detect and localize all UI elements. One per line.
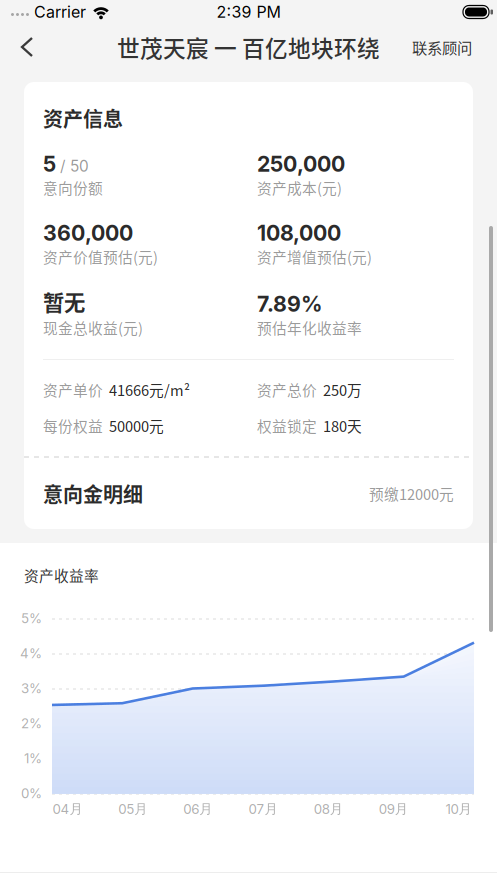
staticText: 5% [21, 610, 42, 626]
staticText: 0% [21, 785, 42, 801]
button[interactable]: 联系顾问 [412, 25, 497, 69]
staticText: 每份权益 [43, 415, 103, 436]
staticText: 250万 [323, 379, 362, 400]
staticText: 联系顾问 [412, 36, 472, 58]
staticText: 04月 [53, 801, 83, 817]
staticText: 09月 [379, 801, 408, 817]
staticText: 06月 [183, 801, 212, 817]
staticText: 预估年化收益率 [257, 317, 362, 338]
staticText: Carrier [34, 2, 86, 22]
staticText: 10月 [445, 801, 471, 817]
staticText: 5 [43, 151, 56, 177]
staticText: 250,000 [257, 151, 345, 177]
staticText: 世茂天宸 一 百亿地块环绕 [117, 31, 380, 63]
staticText: 4% [20, 645, 42, 661]
staticText: 暂无 [43, 286, 85, 317]
staticText: 05月 [118, 801, 147, 817]
staticText: 180天 [323, 415, 362, 436]
staticText: 2% [21, 715, 42, 731]
staticText: 50000元 [109, 415, 164, 436]
staticText: 资产增值预估(元) [257, 246, 372, 267]
staticText: 预缴12000元 [369, 483, 454, 504]
staticText: 资产单价 [43, 379, 103, 400]
staticText: 360,000 [43, 220, 133, 246]
staticText: 资产成本(元) [257, 177, 342, 198]
staticText: 07月 [248, 801, 277, 817]
staticText: 3% [21, 680, 42, 696]
staticText: 权益锁定 [257, 415, 317, 436]
staticText: 意向份额 [43, 177, 103, 198]
staticText: 资产价值预估(元) [43, 246, 158, 267]
staticText: 资产信息 [43, 103, 123, 132]
button[interactable]: Back [0, 28, 54, 66]
staticText: / 50 [60, 157, 89, 176]
staticText: 资产收益率 [24, 564, 99, 586]
staticText: 2:39 PM [216, 2, 280, 22]
staticText: 08月 [314, 801, 343, 817]
staticText: 108,000 [257, 220, 341, 246]
staticText: 现金总收益(元) [43, 317, 143, 338]
staticText: 7.89% [257, 291, 322, 317]
staticText: 1% [24, 750, 42, 766]
staticText: 资产总价 [257, 379, 317, 400]
button[interactable]: 意向金明细 [24, 458, 473, 529]
staticText: 41666元/m² [109, 379, 190, 400]
staticText: 意向金明细 [43, 479, 143, 508]
